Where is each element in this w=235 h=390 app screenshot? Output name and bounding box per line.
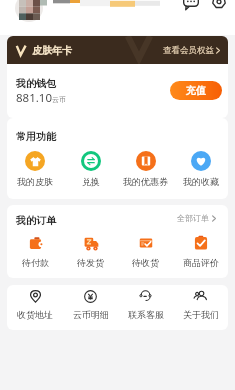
staticText: 全部订单 — [177, 213, 209, 223]
button[interactable]: Messages — [182, 0, 200, 12]
button[interactable]: 待发货 — [63, 235, 118, 268]
button[interactable]: 我的皮肤 — [7, 151, 63, 187]
button[interactable]: 收货地址 — [7, 290, 63, 320]
staticText: 云币 — [52, 95, 66, 104]
staticText: 查看会员权益 — [163, 45, 214, 56]
button[interactable]: 皮肤年卡 — [7, 36, 228, 64]
button[interactable]: 云币明细 — [63, 290, 118, 320]
staticText: 待收货 — [132, 257, 159, 268]
staticText: 关于我们 — [183, 309, 219, 320]
button[interactable]: Settings — [210, 0, 228, 12]
staticText: 我的优惠券 — [123, 176, 168, 187]
button[interactable]: 全部订单 — [175, 211, 218, 225]
button[interactable]: 关于我们 — [173, 290, 228, 320]
staticText: 常用功能 — [16, 130, 56, 143]
button[interactable]: 充值 — [170, 81, 222, 100]
staticText: 充值 — [186, 84, 206, 97]
staticText: 待发货 — [77, 257, 104, 268]
button[interactable]: 我的收藏 — [173, 151, 228, 187]
staticText: 881.10 — [16, 90, 52, 106]
button[interactable]: 待收货 — [118, 235, 173, 268]
staticText: 商品评价 — [183, 257, 219, 268]
button[interactable]: 商品评价 — [173, 235, 228, 268]
staticText: 我的皮肤 — [17, 176, 53, 187]
staticText: 兑换 — [82, 176, 100, 187]
staticText: 联系客服 — [128, 309, 164, 320]
staticText: 我的钱包 — [16, 77, 56, 90]
staticText: 云币明细 — [73, 309, 109, 320]
button[interactable] — [15, 0, 43, 22]
button[interactable]: 我的优惠券 — [118, 151, 173, 187]
button[interactable]: 联系客服 — [118, 290, 173, 320]
staticText: 我的收藏 — [183, 176, 219, 187]
staticText: 我的订单 — [16, 214, 56, 227]
button[interactable]: 兑换 — [63, 151, 118, 187]
staticText: 收货地址 — [17, 309, 53, 320]
button[interactable]: 待付款 — [7, 235, 63, 268]
staticText: 皮肤年卡 — [32, 44, 72, 57]
staticText: 待付款 — [22, 257, 49, 268]
